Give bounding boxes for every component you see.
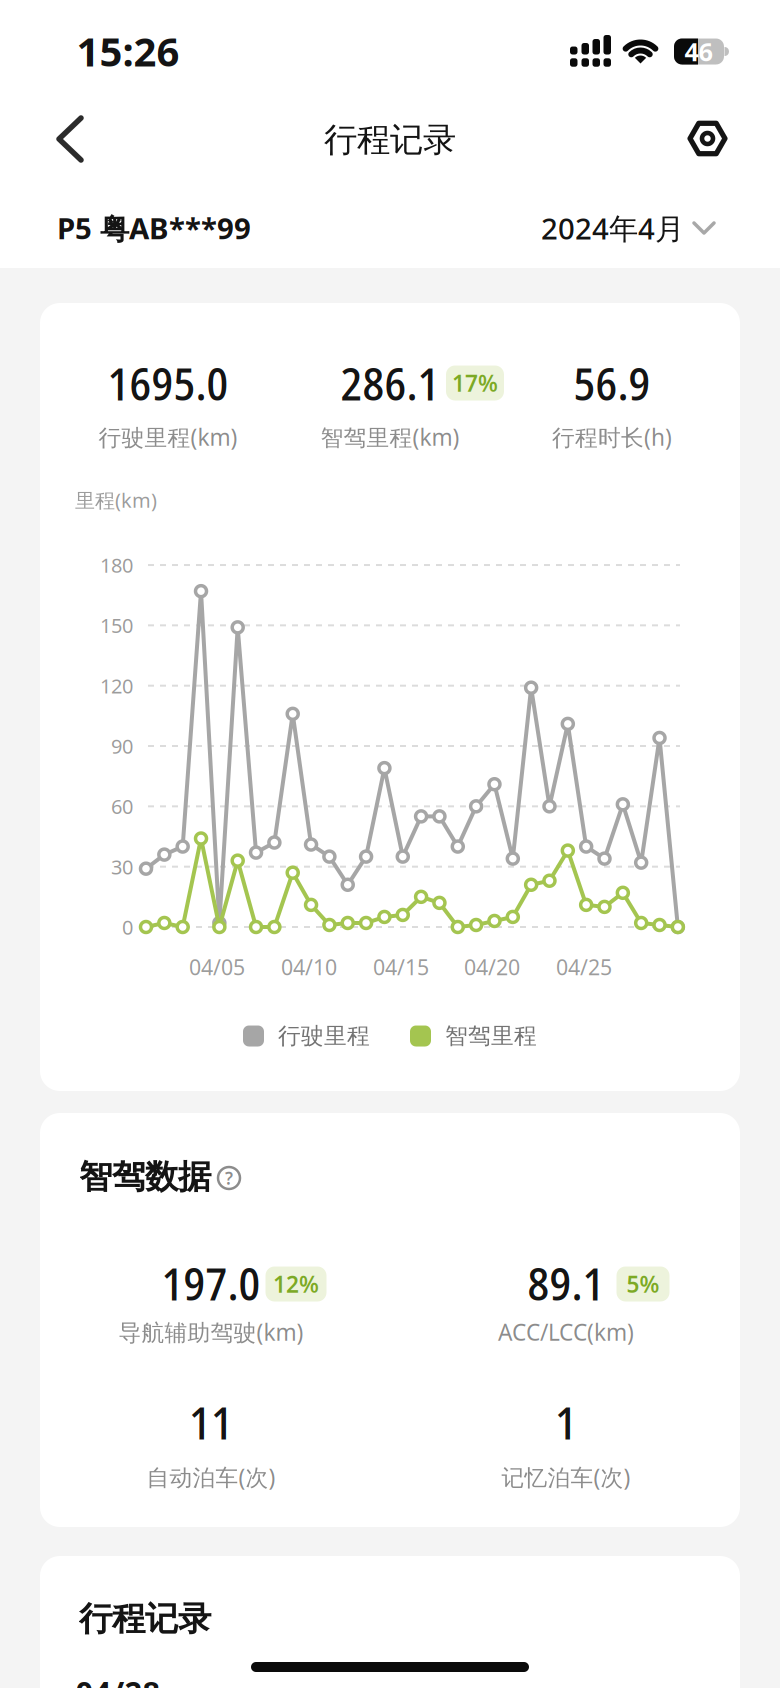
- button[interactable]: Back: [54, 114, 98, 164]
- staticText: 自动泊车(次): [146, 1462, 275, 1492]
- staticText: 行程记录: [324, 119, 456, 160]
- staticText: 04/20: [464, 953, 520, 981]
- staticText: 行程时长(h): [552, 422, 672, 452]
- staticText: 1695.0: [107, 352, 228, 414]
- staticText: 行驶里程(km): [98, 422, 237, 452]
- staticText: 11: [189, 1391, 233, 1453]
- staticText: 5%: [626, 1269, 659, 1299]
- staticText: 行驶里程: [278, 1022, 370, 1050]
- staticText: 04/25: [556, 953, 612, 981]
- staticText: 04/15: [373, 953, 429, 981]
- staticText: 智驾数据: [79, 1156, 211, 1197]
- staticText: 04/05: [189, 953, 245, 981]
- staticText: 1: [555, 1391, 577, 1453]
- staticText: 里程(km): [75, 487, 157, 513]
- staticText: 行程记录: [79, 1598, 211, 1639]
- button[interactable]: 2024年4月: [416, 208, 716, 247]
- staticText: 12%: [273, 1269, 319, 1299]
- staticText: 89.1: [527, 1252, 604, 1314]
- staticText: 180: [100, 552, 133, 578]
- staticText: 30: [111, 853, 133, 880]
- staticText: 286.1: [340, 352, 439, 414]
- staticText: 15:26: [76, 24, 179, 77]
- staticText: 04/10: [281, 953, 337, 981]
- staticText: 56.9: [573, 352, 650, 414]
- staticText: 04/28: [75, 1672, 160, 1688]
- button[interactable]: Settings: [684, 117, 731, 159]
- button[interactable]: Help: [216, 1165, 242, 1191]
- staticText: 导航辅助驾驶(km): [118, 1317, 303, 1347]
- staticText: 记忆泊车(次): [501, 1462, 630, 1492]
- staticText: 智驾里程(km): [320, 422, 459, 452]
- staticText: 46: [684, 35, 712, 68]
- staticText: 197.0: [161, 1252, 260, 1314]
- staticText: P5 粤AB***99: [57, 208, 251, 247]
- staticText: 17%: [452, 368, 498, 398]
- staticText: 120: [100, 672, 133, 699]
- staticText: 90: [111, 733, 133, 759]
- staticText: 150: [100, 612, 133, 639]
- staticText: ACC/LCC(km): [498, 1317, 634, 1347]
- staticText: 2024年4月: [541, 208, 684, 247]
- staticText: 60: [111, 793, 133, 820]
- staticText: 0: [122, 914, 133, 940]
- staticText: 智驾里程: [445, 1022, 537, 1050]
- staticText: ?: [225, 1166, 233, 1189]
